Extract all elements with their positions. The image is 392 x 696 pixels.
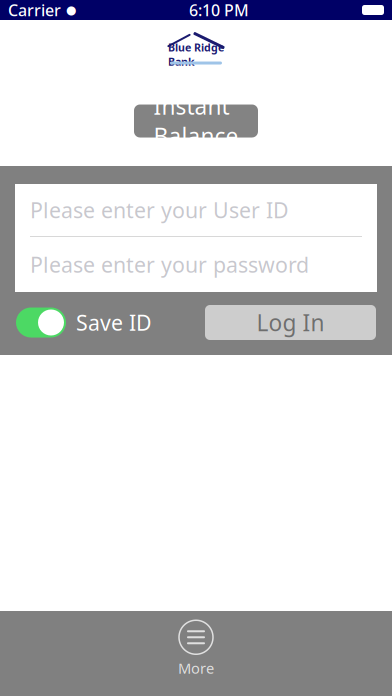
staticText: Please enter your User ID bbox=[30, 196, 289, 224]
button[interactable]: Save ID bbox=[16, 307, 152, 337]
staticText: Blue Ridge Bank bbox=[168, 40, 224, 69]
button[interactable]: Instant Balance bbox=[134, 104, 258, 137]
staticText: ● bbox=[66, 3, 76, 17]
staticText: Please enter your password bbox=[30, 250, 309, 279]
staticText: Log In bbox=[256, 307, 324, 337]
button[interactable]: Please enter your User ID bbox=[15, 184, 377, 236]
staticText: Carrier bbox=[8, 0, 61, 21]
staticText: 6:10 PM bbox=[189, 0, 249, 21]
button[interactable]: More bbox=[151, 621, 241, 677]
button[interactable]: Please enter your password bbox=[15, 237, 377, 292]
staticText: Save ID bbox=[76, 308, 152, 337]
staticText: Instant Balance bbox=[153, 91, 238, 151]
staticText: More bbox=[178, 658, 214, 678]
button[interactable]: Log In bbox=[205, 305, 376, 340]
